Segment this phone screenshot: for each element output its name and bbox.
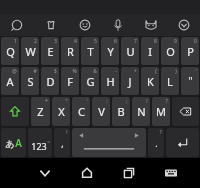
staticText: R bbox=[67, 44, 74, 59]
staticText: 9 bbox=[174, 38, 177, 45]
button[interactable]: , bbox=[54, 128, 70, 157]
button[interactable]: C bbox=[72, 97, 90, 126]
button[interactable]: L bbox=[161, 67, 179, 95]
staticText: 0 bbox=[194, 38, 197, 45]
staticText: L bbox=[167, 74, 173, 89]
button[interactable]: Hide keyboard bbox=[150, 158, 192, 188]
button[interactable]: Home bbox=[66, 158, 108, 188]
button[interactable]: K bbox=[141, 67, 159, 95]
staticText: ) bbox=[175, 68, 177, 75]
staticText: N bbox=[137, 104, 146, 119]
button[interactable]: G bbox=[81, 67, 99, 95]
staticText: : bbox=[106, 98, 108, 105]
staticText: ? bbox=[165, 98, 168, 105]
staticText: Z bbox=[37, 104, 44, 119]
staticText: M bbox=[156, 104, 166, 119]
button[interactable]: Back bbox=[24, 158, 66, 188]
button[interactable]: . bbox=[148, 128, 164, 157]
staticText: J bbox=[128, 74, 132, 89]
button[interactable]: F bbox=[61, 67, 79, 95]
button[interactable]: Shift bbox=[1, 97, 29, 126]
staticText: ; bbox=[126, 98, 128, 105]
button[interactable]: Voice input bbox=[101, 14, 134, 36]
staticText: ' bbox=[195, 68, 197, 75]
staticText: 123 bbox=[31, 140, 47, 152]
button[interactable]: T bbox=[81, 37, 99, 65]
staticText: ! bbox=[66, 129, 68, 136]
button[interactable]: J bbox=[121, 67, 139, 95]
button[interactable]: あ bbox=[1, 128, 26, 157]
button[interactable]: Backspace bbox=[172, 97, 199, 126]
staticText: F bbox=[67, 74, 73, 89]
button[interactable]: X bbox=[52, 97, 70, 126]
button[interactable]: Cat stickers bbox=[134, 14, 167, 36]
button[interactable]: B bbox=[112, 97, 130, 126]
staticText: % bbox=[72, 68, 77, 75]
staticText: D bbox=[46, 74, 55, 89]
staticText: ? bbox=[159, 129, 162, 136]
button[interactable]: Z bbox=[31, 97, 50, 126]
staticText: H bbox=[106, 74, 115, 89]
staticText: S bbox=[27, 74, 34, 89]
button[interactable]: N bbox=[132, 97, 150, 126]
staticText: 1 bbox=[14, 38, 17, 45]
staticText: I bbox=[148, 44, 152, 59]
button[interactable]: Enter bbox=[166, 128, 199, 157]
staticText: 6 bbox=[114, 38, 117, 45]
button[interactable]: 123 bbox=[28, 128, 52, 157]
staticText: G bbox=[86, 74, 95, 89]
staticText: Q bbox=[6, 44, 15, 59]
button[interactable]: U bbox=[121, 37, 139, 65]
button[interactable]: E bbox=[41, 37, 59, 65]
staticText: P bbox=[187, 44, 194, 59]
staticText: Y bbox=[107, 44, 114, 59]
button[interactable]: I bbox=[141, 37, 159, 65]
staticText: * bbox=[45, 98, 48, 105]
button[interactable]: Emoji bbox=[68, 14, 101, 36]
staticText: 3 bbox=[54, 38, 57, 45]
staticText: A bbox=[15, 136, 22, 150]
staticText: " bbox=[65, 98, 68, 105]
staticText: ° bbox=[47, 139, 50, 147]
button[interactable]: S bbox=[21, 67, 39, 95]
staticText: V bbox=[98, 104, 105, 119]
button[interactable]: P bbox=[181, 37, 199, 65]
staticText: . bbox=[155, 137, 158, 149]
staticText: ! bbox=[146, 98, 148, 105]
staticText: 8 bbox=[154, 38, 157, 45]
staticText: , bbox=[61, 137, 64, 149]
staticText: 4 bbox=[74, 38, 77, 45]
staticText: あ bbox=[5, 138, 15, 149]
staticText: X bbox=[58, 104, 65, 119]
staticText: 5 bbox=[94, 38, 97, 45]
button[interactable]: " bbox=[181, 67, 199, 95]
button[interactable]: Space bbox=[72, 128, 146, 157]
button[interactable]: V bbox=[92, 97, 110, 126]
staticText: # bbox=[33, 68, 37, 75]
button[interactable]: Search bbox=[0, 14, 34, 36]
button[interactable]: Q bbox=[1, 37, 19, 65]
staticText: " bbox=[188, 74, 193, 88]
button[interactable]: Stickers bbox=[34, 14, 68, 36]
button[interactable]: H bbox=[101, 67, 119, 95]
staticText: O bbox=[166, 44, 175, 59]
staticText: W bbox=[25, 44, 36, 59]
button[interactable]: M bbox=[152, 97, 170, 126]
staticText: 2 bbox=[34, 38, 37, 45]
staticText: $ bbox=[54, 68, 57, 75]
staticText: ' bbox=[86, 98, 88, 105]
staticText: 7 bbox=[134, 38, 137, 45]
button[interactable]: D bbox=[41, 67, 59, 95]
button[interactable]: W bbox=[21, 37, 39, 65]
staticText: @ bbox=[12, 68, 17, 75]
staticText: E bbox=[47, 44, 54, 59]
button[interactable]: More options bbox=[167, 14, 200, 36]
button[interactable]: A bbox=[1, 67, 19, 95]
staticText: - bbox=[115, 68, 117, 75]
staticText: U bbox=[126, 44, 135, 59]
button[interactable]: R bbox=[61, 37, 79, 65]
button[interactable]: O bbox=[161, 37, 179, 65]
button[interactable]: Recent apps bbox=[108, 158, 150, 188]
staticText: A bbox=[6, 74, 14, 89]
button[interactable]: Y bbox=[101, 37, 119, 65]
